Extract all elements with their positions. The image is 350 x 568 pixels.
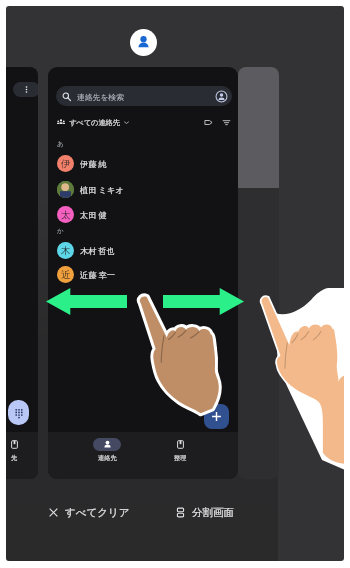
button[interactable]: Contacts app icon <box>130 29 157 56</box>
staticText: 植田 ミキオ <box>80 184 124 195</box>
button[interactable]: 伊 <box>57 151 238 175</box>
staticText: 分割画面 <box>192 506 234 519</box>
staticText: すべての連絡先 <box>69 118 120 127</box>
button[interactable]: Add contact <box>204 404 229 429</box>
button[interactable]: 分割画面 <box>175 506 234 519</box>
button[interactable]: 近 <box>57 262 238 286</box>
staticText: 先 <box>11 454 18 462</box>
staticText: 整理 <box>174 454 187 462</box>
button[interactable]: Dialpad <box>6 67 38 479</box>
staticText: 太 <box>61 209 71 221</box>
button[interactable] <box>238 67 279 479</box>
button[interactable]: 木 <box>57 238 238 262</box>
staticText: 近 <box>61 269 71 281</box>
staticText: 連絡先を検索 <box>77 92 124 102</box>
staticText: 太田 健 <box>80 209 107 220</box>
staticText: 伊藤 純 <box>80 158 107 169</box>
button[interactable]: Dialpad <box>8 400 29 425</box>
button[interactable]: 植田 ミキオ <box>57 177 238 201</box>
button[interactable]: 連絡先を検索 <box>48 67 238 479</box>
button[interactable]: すべてクリア <box>48 506 130 519</box>
button[interactable]: 整理 <box>156 438 204 462</box>
staticText: か <box>57 227 64 235</box>
staticText: 連絡先 <box>98 454 117 462</box>
staticText: 木村 哲也 <box>80 245 115 256</box>
staticText: 近藤 幸一 <box>80 269 115 280</box>
button[interactable]: 太 <box>57 202 238 226</box>
staticText: 木 <box>61 245 71 257</box>
staticText: すべてクリア <box>65 506 130 519</box>
staticText: あ <box>57 140 64 148</box>
staticText: 伊 <box>61 158 71 170</box>
button[interactable]: 連絡先を検索 <box>56 86 232 106</box>
button[interactable]: 連絡先 <box>83 438 131 462</box>
